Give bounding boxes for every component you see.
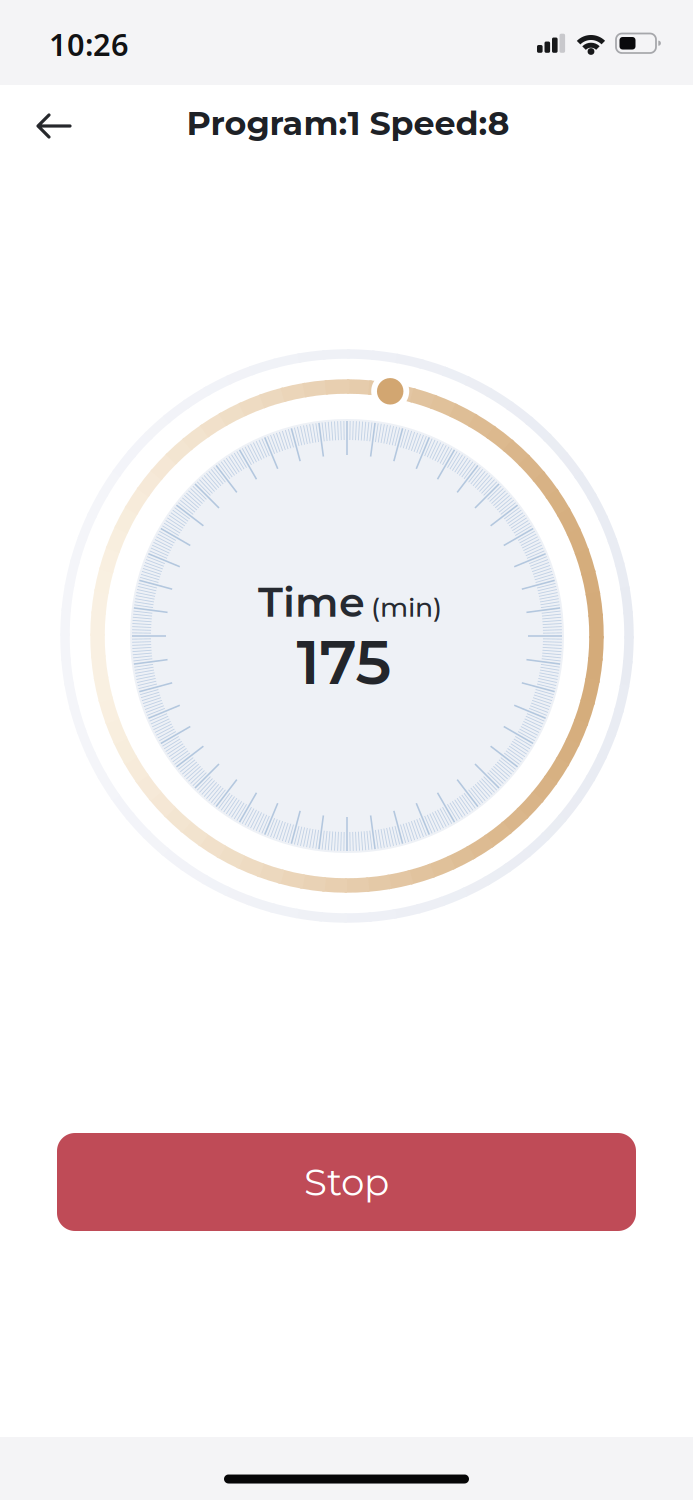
staticText: (min) [371, 591, 442, 623]
button[interactable]: Stop [57, 1133, 636, 1231]
button[interactable]: Time knob [371, 372, 409, 410]
button[interactable]: Back [30, 106, 78, 146]
staticText: 10:26 [49, 24, 129, 64]
staticText: 175 [296, 625, 391, 699]
staticText: Time [258, 577, 365, 627]
staticText: Stop [304, 1159, 389, 1205]
staticText: Program:1 Speed:8 [186, 103, 509, 143]
